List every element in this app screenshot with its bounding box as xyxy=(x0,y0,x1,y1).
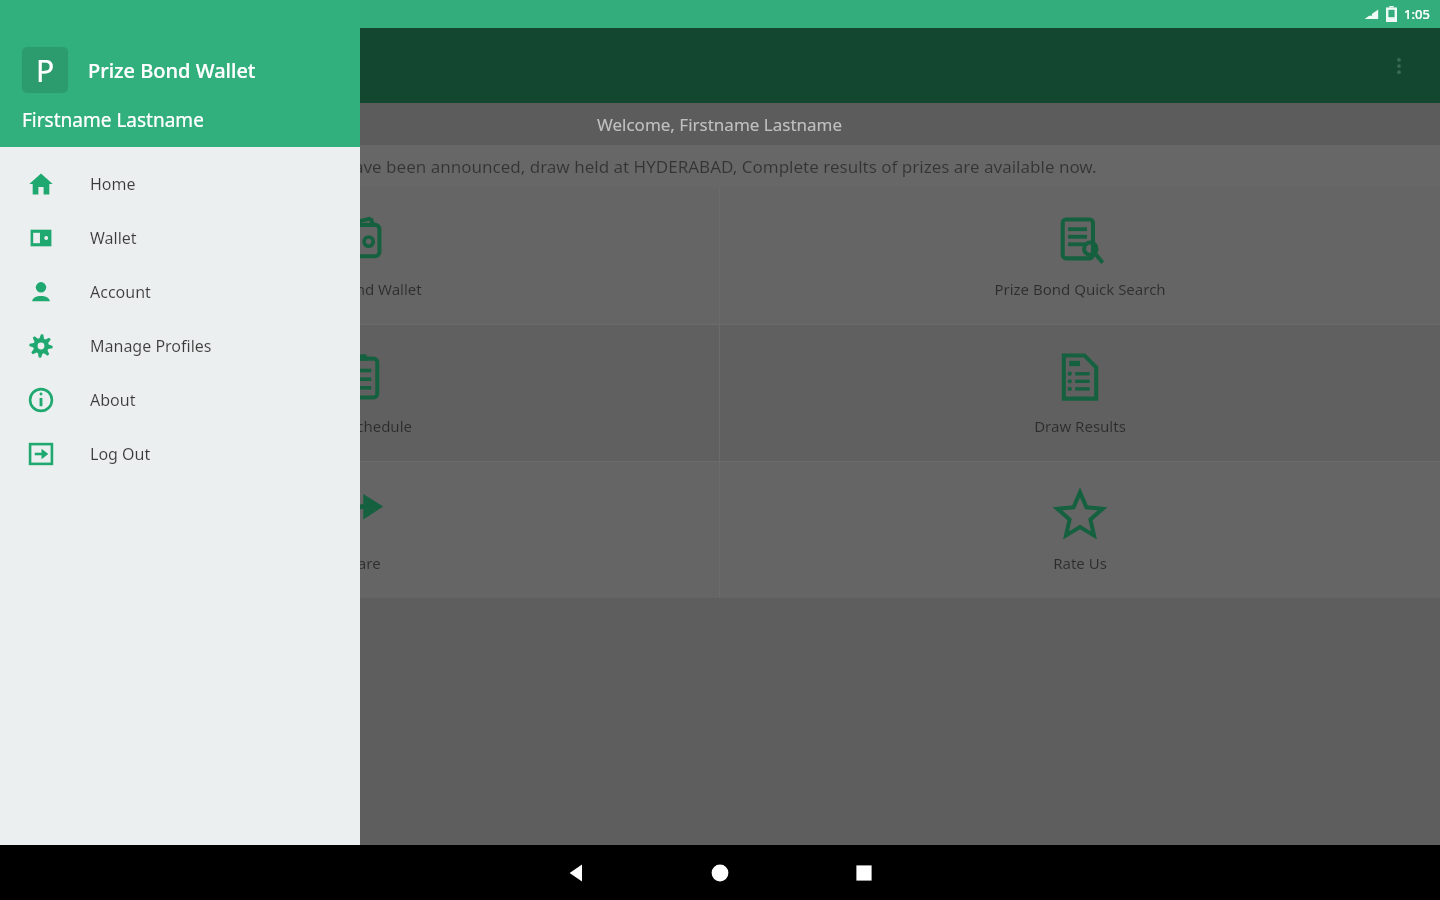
staticText: About xyxy=(90,389,136,411)
button[interactable]: Recent apps xyxy=(816,845,912,900)
staticText: Prize Bond Wallet xyxy=(88,57,256,84)
button[interactable]: Account xyxy=(0,265,360,319)
button[interactable]: Prize Bond Quick Search xyxy=(720,187,1440,324)
button[interactable]: Wallet xyxy=(0,211,360,265)
button[interactable]: About xyxy=(0,373,360,427)
button[interactable]: Prize Bond Wallet xyxy=(0,187,719,324)
staticText: Draw Schedule xyxy=(307,416,412,436)
button[interactable]: Share xyxy=(0,462,719,598)
staticText: Firstname Lastname xyxy=(22,107,204,133)
staticText: Prize Bond Quick Search xyxy=(994,279,1166,299)
staticText: Log Out xyxy=(90,443,151,465)
button[interactable]: Rate Us xyxy=(720,462,1440,598)
button[interactable]: Draw Schedule xyxy=(0,325,719,461)
staticText: Share xyxy=(340,553,381,573)
button[interactable]: Home xyxy=(672,845,768,900)
staticText: Welcome, Firstname Lastname xyxy=(597,113,843,136)
staticText: Manage Profiles xyxy=(90,335,212,357)
staticText: Prize Bond Wallet xyxy=(298,279,422,299)
button[interactable]: Home xyxy=(0,157,360,211)
staticText: P xyxy=(36,50,55,91)
staticText: 1:05 xyxy=(1404,5,1430,23)
staticText: Home xyxy=(90,173,136,195)
button[interactable]: Manage Profiles xyxy=(0,319,360,373)
staticText: Wallet xyxy=(90,227,137,249)
button[interactable]: Log Out xyxy=(0,427,360,481)
button[interactable]: Draw Results xyxy=(720,325,1440,461)
staticText: have been announced, draw held at HYDERA… xyxy=(343,155,1097,178)
button[interactable]: Back xyxy=(528,845,624,900)
staticText: Account xyxy=(90,281,151,303)
staticText: Rate Us xyxy=(1053,553,1107,573)
button[interactable]: More options xyxy=(1376,43,1422,89)
staticText: Draw Results xyxy=(1034,416,1126,436)
